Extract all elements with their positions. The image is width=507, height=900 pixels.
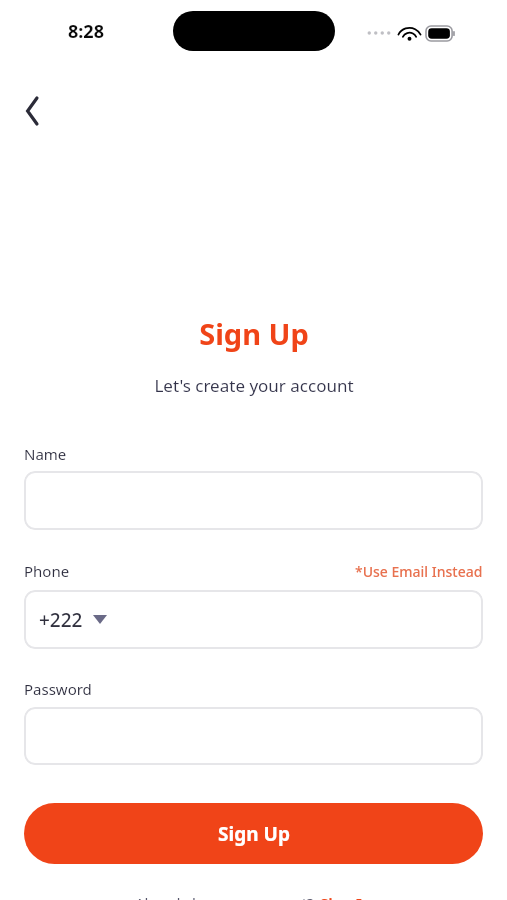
- button[interactable]: Sign Up: [24, 803, 483, 864]
- staticText: Sign Up: [218, 821, 290, 847]
- staticText: Name: [24, 444, 67, 464]
- staticText: Sign Up: [199, 314, 309, 353]
- button[interactable]: [24, 471, 483, 530]
- staticText: Let's create your account: [154, 374, 354, 397]
- staticText: *Use Email Instead: [355, 562, 483, 581]
- staticText: +222: [39, 607, 83, 633]
- staticText: Password: [24, 679, 92, 699]
- button[interactable]: Sign In: [320, 893, 372, 900]
- button[interactable]: Back: [10, 88, 56, 134]
- staticText: Sign In: [320, 893, 372, 900]
- staticText: Already have an account?: [135, 893, 314, 900]
- staticText: 8:28: [68, 19, 104, 44]
- button[interactable]: [24, 707, 483, 765]
- staticText: Phone: [24, 561, 70, 581]
- button[interactable]: *Use Email Instead: [355, 562, 483, 581]
- button[interactable]: +222: [24, 590, 483, 649]
